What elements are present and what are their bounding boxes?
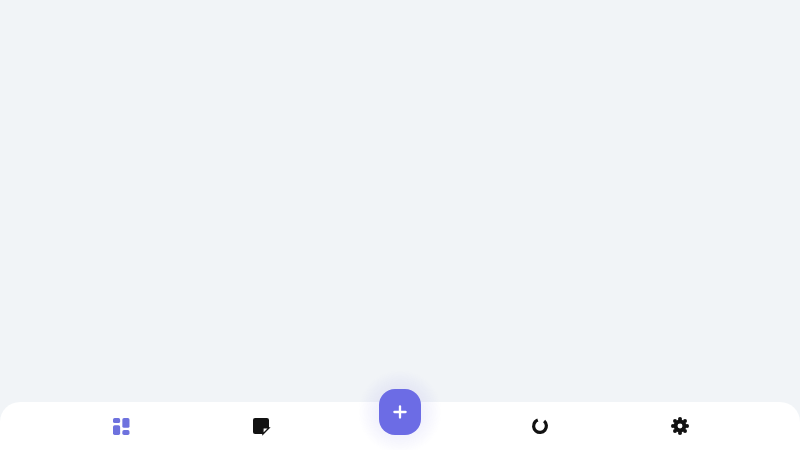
button[interactable]: Dashboard xyxy=(101,402,141,450)
button[interactable]: Add xyxy=(379,389,421,435)
button[interactable]: Notes xyxy=(241,402,281,450)
button[interactable]: Settings xyxy=(660,402,700,450)
button[interactable]: Activity xyxy=(520,402,560,450)
